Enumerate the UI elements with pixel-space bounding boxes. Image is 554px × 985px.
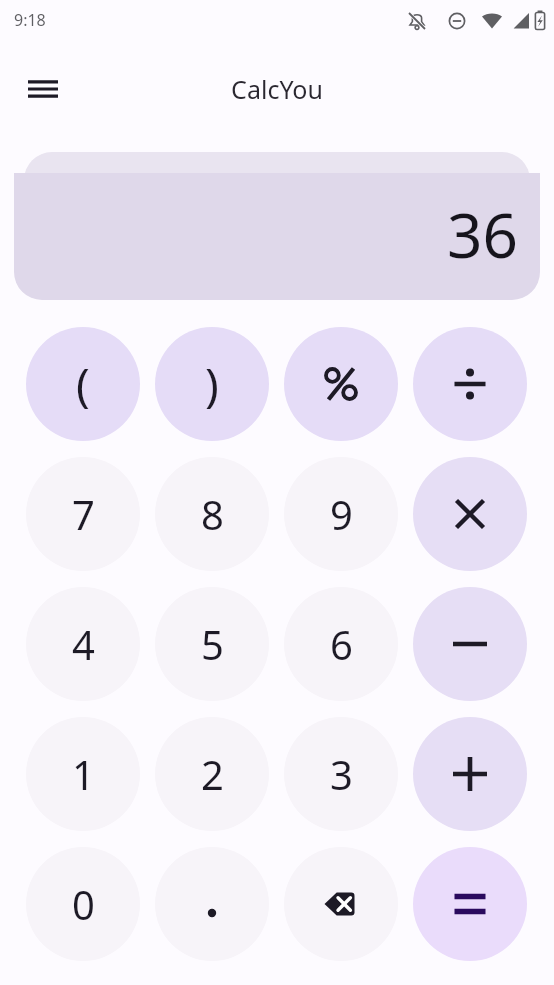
button[interactable]: 1 [26,717,140,831]
staticText: 4 [72,617,95,671]
staticText: 1 [72,747,95,801]
button[interactable]: 4 [26,587,140,701]
button[interactable]: Add [413,717,527,831]
button[interactable]: 8 [155,457,269,571]
button[interactable]: ( [26,327,140,441]
button[interactable]: 2 [155,717,269,831]
button[interactable]: 0 [26,847,140,961]
button[interactable]: Backspace [284,847,398,961]
button[interactable]: Decimal point [155,847,269,961]
button[interactable]: Multiply [413,457,527,571]
button[interactable]: Open navigation menu [14,60,72,118]
staticText: 36 [447,192,518,276]
button[interactable]: Subtract [413,587,527,701]
button[interactable]: 6 [284,587,398,701]
staticText: 9 [330,487,353,541]
button[interactable]: 36 [14,173,540,300]
staticText: 9:18 [14,9,46,31]
staticText: ) [205,353,219,416]
staticText: 2 [201,747,224,801]
staticText: 6 [330,617,353,671]
staticText: 7 [72,487,95,541]
staticText: 3 [330,747,353,801]
button[interactable]: 3 [284,717,398,831]
button[interactable]: ) [155,327,269,441]
staticText: ( [76,353,90,416]
button[interactable]: 5 [155,587,269,701]
button[interactable]: 7 [26,457,140,571]
staticText: CalcYou [231,72,323,106]
staticText: 0 [72,877,95,931]
button[interactable]: Divide [413,327,527,441]
staticText: 5 [201,617,224,671]
button[interactable]: Equals [413,847,527,961]
button[interactable]: 9 [284,457,398,571]
staticText: 8 [201,487,224,541]
button[interactable]: Percent [284,327,398,441]
